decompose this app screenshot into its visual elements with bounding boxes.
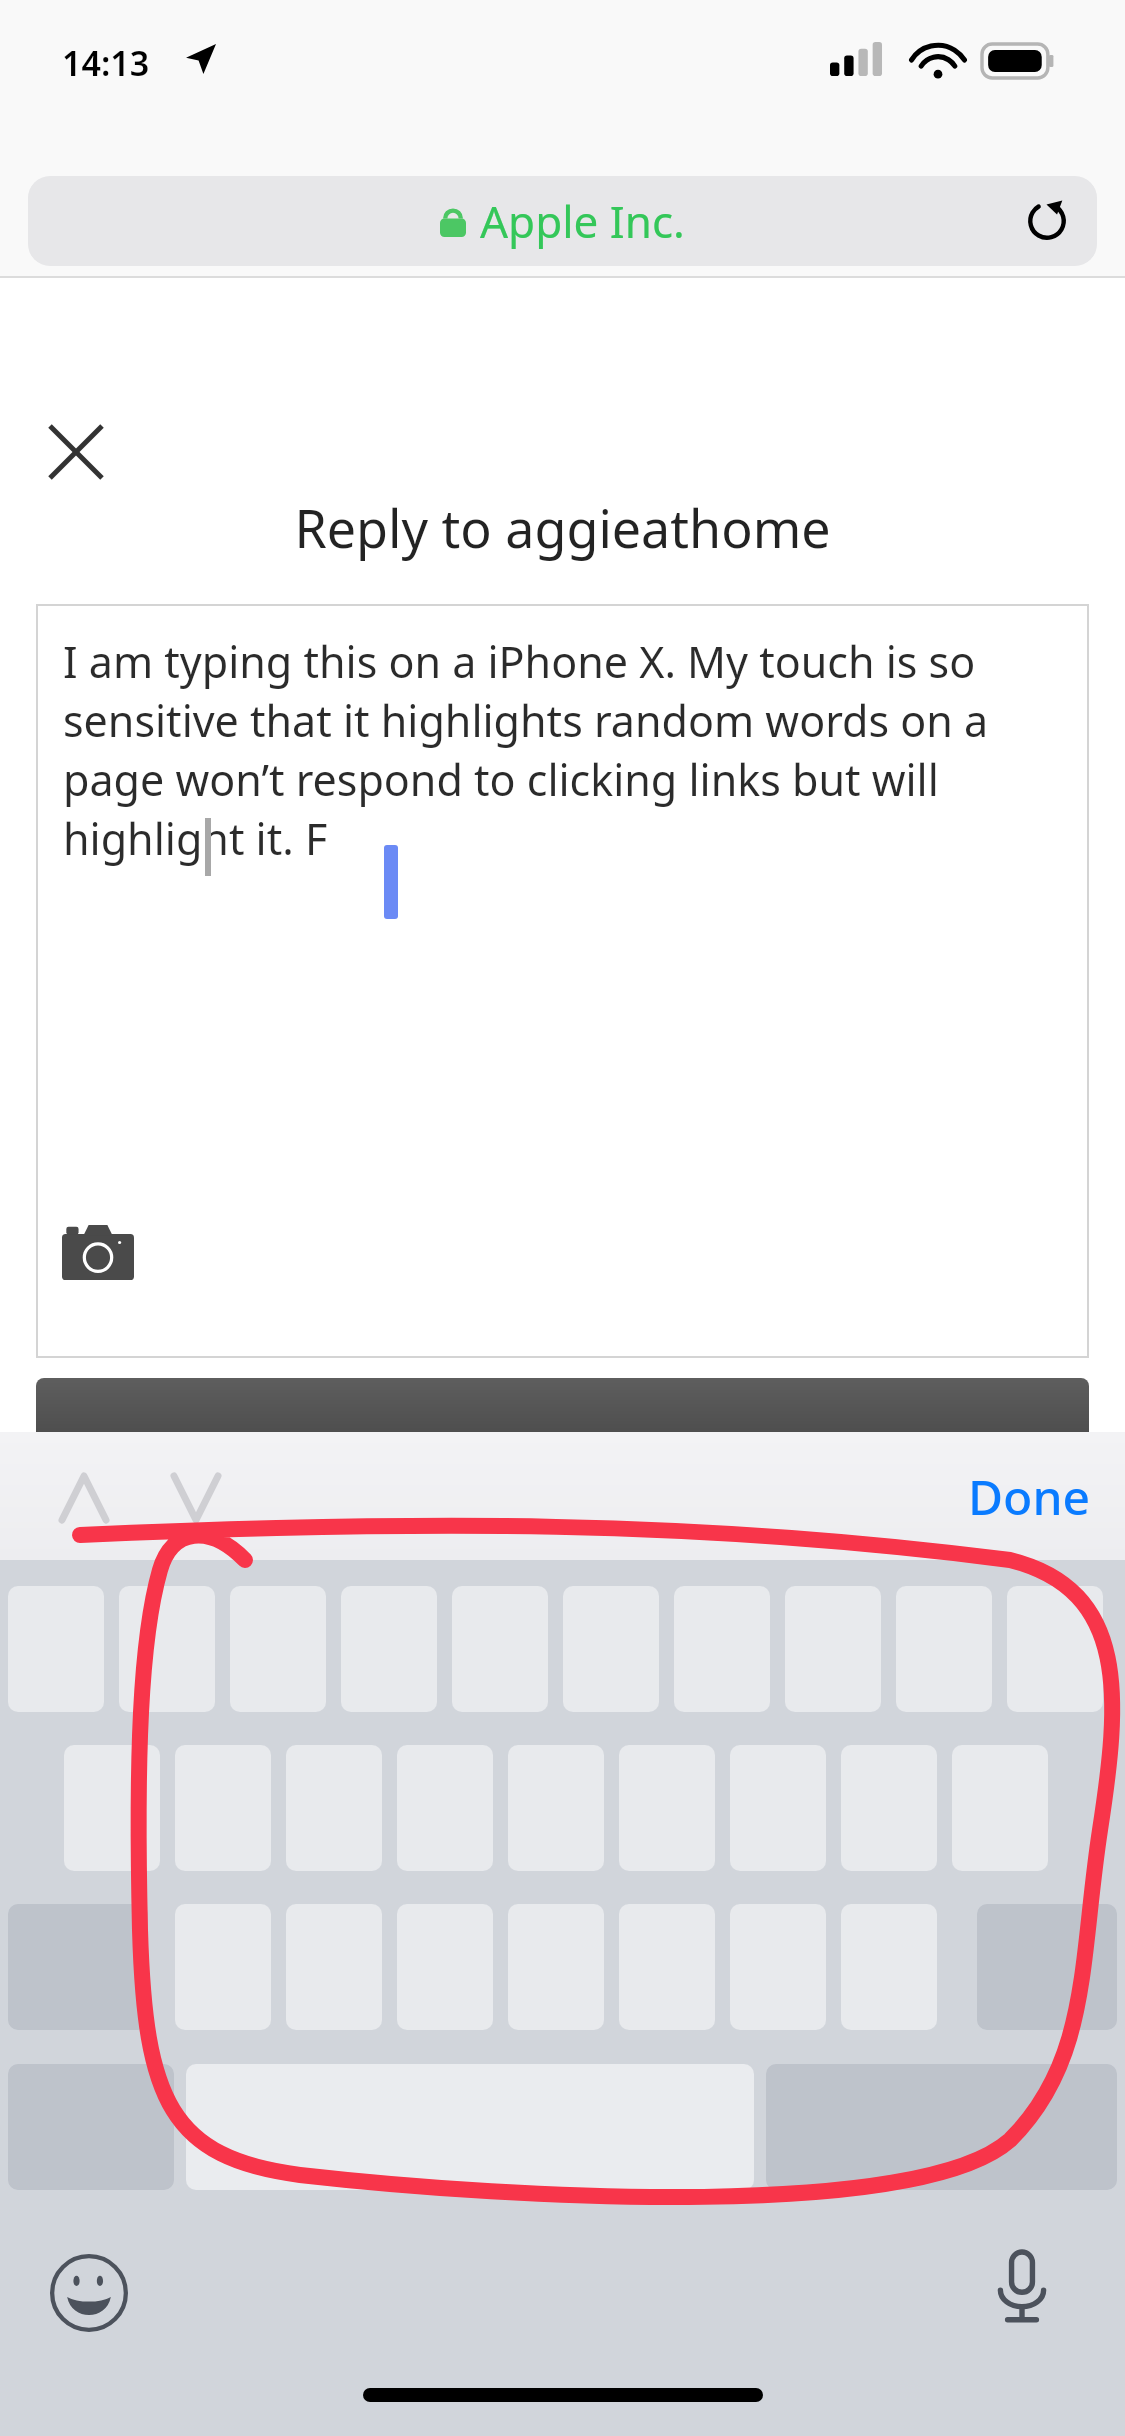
staticText: Reply to aggieathome [0,492,1125,563]
button[interactable]: Key [119,1586,215,1712]
button[interactable]: Attach photo [62,1224,134,1280]
button[interactable]: Shift [8,1904,148,2030]
button[interactable]: Return [766,2064,1117,2190]
staticText: I am typing this on a iPhone X. My touch… [63,632,1067,868]
button[interactable]: Done [968,1464,1091,1529]
button[interactable]: I am typing this on a iPhone X. My touch… [36,604,1089,1358]
button[interactable]: Reload [1017,191,1077,251]
staticText: 14:13 [62,40,150,86]
button[interactable]: Numbers [8,2064,174,2190]
button[interactable]: Apple Inc. [28,176,1097,266]
staticText: Apple Inc. [480,191,685,251]
button[interactable]: Next field [152,1454,240,1542]
staticText: Done [968,1464,1091,1529]
staticText: Reply [506,1420,620,1480]
button[interactable]: Previous field [40,1454,128,1542]
button[interactable]: Dictation [980,2246,1064,2330]
button[interactable]: Reply [36,1378,1089,1488]
button[interactable]: Emoji [46,2250,132,2336]
button[interactable] [36,604,1089,856]
button[interactable]: Space [186,2064,754,2190]
button[interactable]: Close [36,412,116,492]
button[interactable]: Key [64,1745,160,1871]
button[interactable]: Key [1007,1586,1103,1712]
button[interactable]: Backspace [977,1904,1117,2030]
